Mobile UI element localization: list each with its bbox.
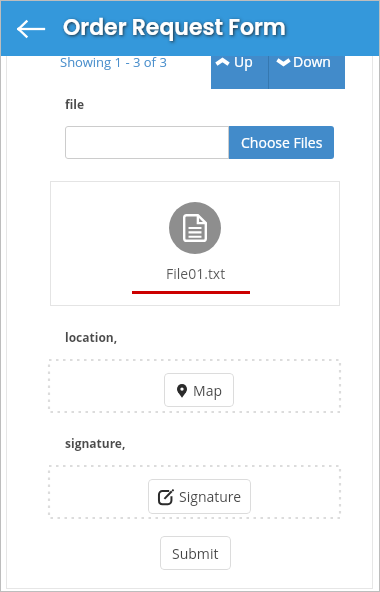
staticText: Order Request Form — [63, 12, 286, 43]
staticText: Showing 1 - 3 of 3 — [60, 53, 167, 71]
staticText: location, — [65, 329, 118, 345]
staticText: signature, — [65, 435, 126, 451]
button[interactable]: Up — [211, 48, 268, 89]
button[interactable]: Choose Files — [229, 126, 334, 159]
staticText: Up — [234, 52, 253, 71]
button[interactable]: Back — [7, 4, 55, 52]
button[interactable]: Submit — [160, 536, 231, 570]
staticText: Choose Files — [241, 133, 323, 152]
button[interactable]: Map — [164, 373, 234, 407]
staticText: Down — [293, 52, 331, 71]
button[interactable]: Signature — [148, 479, 251, 514]
staticText: Submit — [172, 544, 219, 563]
staticText: Signature — [179, 487, 242, 506]
staticText: file — [65, 96, 85, 112]
staticText: File01.txt — [166, 264, 226, 283]
button[interactable]: Down — [269, 48, 345, 89]
staticText: Map — [193, 381, 223, 400]
